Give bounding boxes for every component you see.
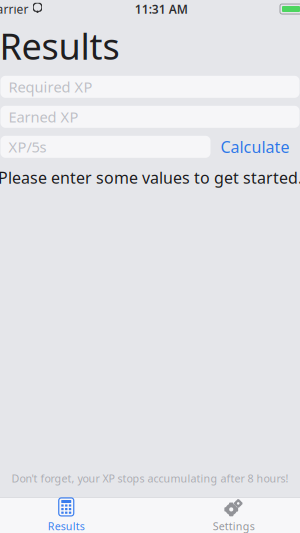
staticText: XP/5s <box>8 137 46 157</box>
staticText: Please enter some values to get started. <box>0 167 300 188</box>
staticText: Required XP <box>8 77 92 97</box>
staticText: 11:31 AM <box>135 1 188 17</box>
button[interactable]: Settings <box>150 498 300 533</box>
staticText: Results <box>0 22 119 70</box>
staticText: Earned XP <box>8 107 78 127</box>
staticText: Calculate <box>220 136 289 157</box>
staticText: Results <box>48 519 85 533</box>
staticText: Settings <box>213 519 255 533</box>
button[interactable]: Calculate <box>220 136 289 158</box>
staticText: Don't forget, your XP stops accumulating… <box>11 471 288 485</box>
button[interactable]: Results <box>0 498 150 533</box>
staticText: Carrier <box>0 1 28 17</box>
